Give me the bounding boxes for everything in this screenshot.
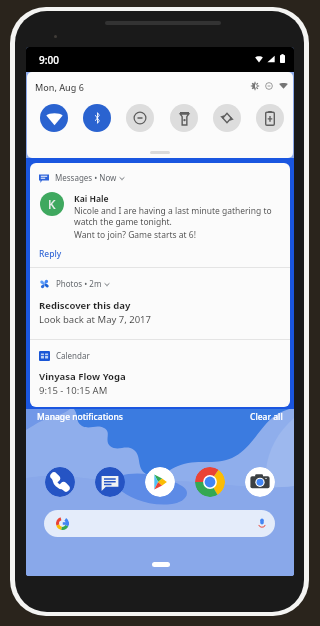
staticText: 9:15 - 10:15 AM xyxy=(39,384,108,397)
button[interactable]: Toggle off xyxy=(256,104,284,132)
button[interactable]: Photos • 2m xyxy=(30,268,290,339)
button[interactable]: Phone xyxy=(45,467,75,497)
staticText: Messages • Now xyxy=(55,172,117,183)
staticText: Calendar xyxy=(56,350,90,361)
button[interactable]: Calendar xyxy=(30,340,290,407)
staticText: Mon, Aug 6 xyxy=(35,81,84,93)
button[interactable]: Chrome xyxy=(195,467,225,497)
button[interactable]: Messages xyxy=(95,467,125,497)
staticText: 9:00 xyxy=(39,53,59,67)
button[interactable]: Clear all xyxy=(250,411,294,423)
staticText: Photos • 2m xyxy=(56,278,102,289)
button[interactable]: Toggle off xyxy=(213,104,241,132)
button[interactable]: Manage notifications xyxy=(26,411,123,423)
staticText: Look back at May 7, 2017 xyxy=(39,313,151,326)
staticText: Nicole and I are having a last minute ga… xyxy=(74,205,286,227)
button[interactable]: Toggle off xyxy=(170,104,198,132)
staticText: Kai Hale xyxy=(74,193,109,205)
button[interactable]: Search xyxy=(44,510,275,537)
staticText: Rediscover this day xyxy=(39,299,131,312)
button[interactable]: Toggle on xyxy=(40,104,68,132)
button[interactable]: Camera xyxy=(245,467,275,497)
button[interactable]: Play Store xyxy=(145,467,175,497)
staticText: Vinyasa Flow Yoga xyxy=(39,370,126,383)
button[interactable]: Toggle off xyxy=(126,104,154,132)
button[interactable]: Reply xyxy=(39,248,62,260)
staticText: Want to join? Game starts at 6! xyxy=(74,229,197,241)
button[interactable]: Toggle on xyxy=(83,104,111,132)
staticText: K xyxy=(48,196,56,212)
button[interactable]: Messages • Now xyxy=(30,163,290,267)
